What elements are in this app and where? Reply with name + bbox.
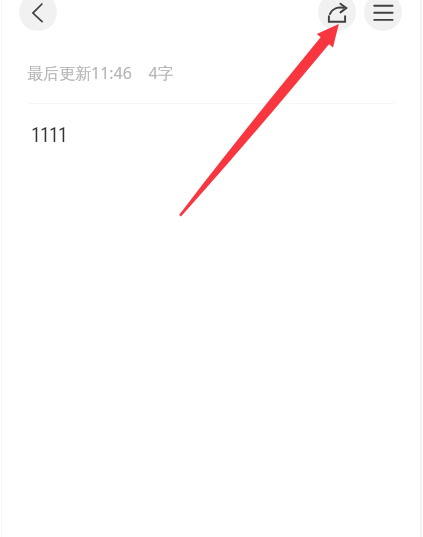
button[interactable]: Back bbox=[19, 0, 57, 31]
staticText: 最后更新11:46 4字 bbox=[27, 62, 174, 84]
button[interactable]: Menu bbox=[364, 0, 402, 31]
staticText: 1111 bbox=[31, 123, 67, 146]
button[interactable]: Share bbox=[318, 0, 356, 31]
